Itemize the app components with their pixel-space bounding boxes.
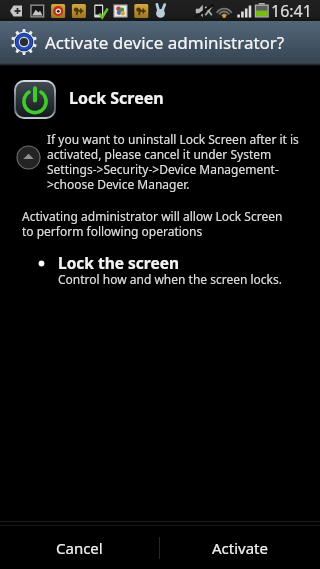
- staticText: Activate device administrator?: [45, 31, 285, 54]
- button[interactable]: Activate: [160, 526, 320, 569]
- staticText: Cancel: [56, 538, 103, 558]
- staticText: If you want to uninstall Lock Screen aft…: [47, 131, 308, 192]
- staticText: Activate: [212, 538, 268, 558]
- staticText: 16:41: [271, 0, 312, 21]
- staticText: Control how and when the screen locks.: [58, 271, 282, 287]
- staticText: Lock Screen: [69, 87, 164, 109]
- staticText: Lock the screen: [58, 252, 180, 273]
- staticText: Activating administrator will allow Lock…: [22, 208, 294, 239]
- button[interactable]: Cancel: [0, 526, 159, 569]
